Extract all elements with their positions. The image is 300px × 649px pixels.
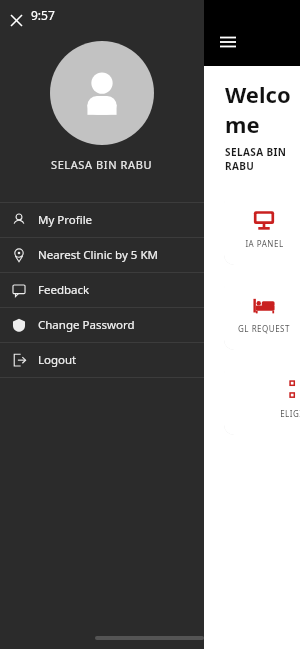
staticText: Change Password — [38, 317, 135, 333]
staticText: Nearest Clinic by 5 KM — [38, 247, 158, 263]
button[interactable]: GL REQUEST — [224, 278, 300, 350]
button[interactable]: Feedback — [0, 273, 204, 307]
staticText: My Profile — [38, 212, 93, 228]
staticText: ELIGIBLE — [280, 408, 300, 419]
staticText: SELASA BIN RABU — [51, 157, 153, 172]
button[interactable]: My Profile — [0, 203, 204, 237]
button[interactable]: Nearest Clinic by 5 KM — [0, 238, 204, 272]
button[interactable]: Close menu — [4, 8, 28, 32]
button[interactable]: ELIGIBLE — [224, 363, 300, 435]
staticText: SELASA BIN RABU — [225, 145, 300, 173]
staticText: Welcome — [225, 79, 300, 139]
staticText: IA PANEL — [245, 238, 284, 249]
button[interactable]: Open navigation menu — [212, 26, 244, 58]
staticText: GL REQUEST — [238, 323, 290, 334]
staticText: Feedback — [38, 282, 90, 298]
button[interactable]: IA PANEL — [224, 193, 300, 265]
button[interactable]: Change Password — [0, 308, 204, 342]
staticText: Logout — [38, 352, 77, 368]
button[interactable]: Logout — [0, 343, 204, 377]
staticText: 9:57 — [31, 7, 55, 23]
